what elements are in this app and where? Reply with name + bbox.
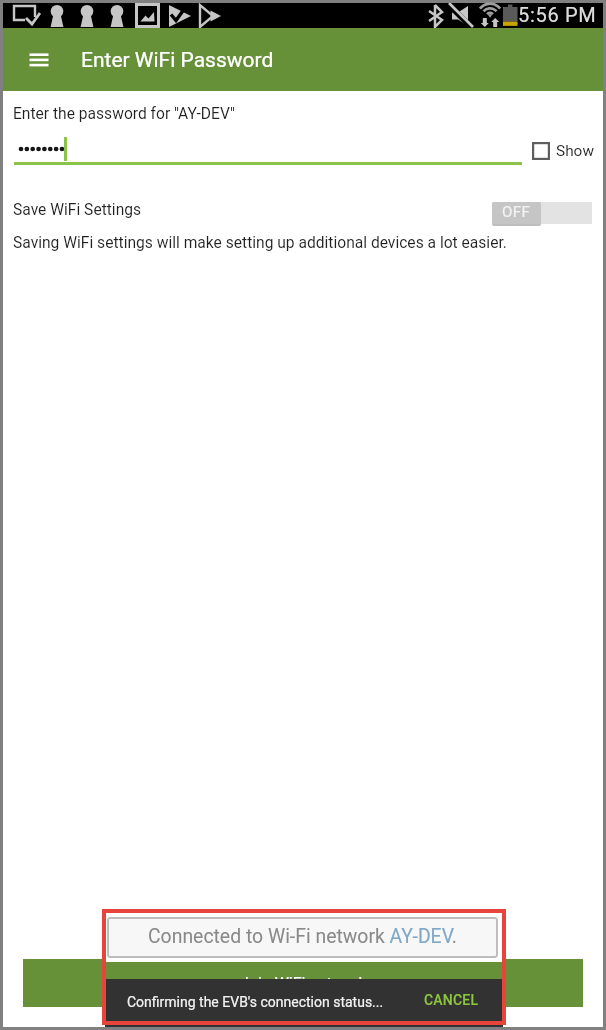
staticText: Enter the password for "AY-DEV" (13, 105, 235, 123)
staticText: Save WiFi Settings (13, 201, 142, 219)
staticText: Show (556, 142, 594, 160)
staticText: CANCEL (424, 992, 479, 1008)
staticText: Saving WiFi settings will make setting u… (13, 234, 507, 252)
button[interactable]: Join WiFi network (23, 959, 583, 1007)
button[interactable]: CANCEL (418, 985, 484, 1015)
staticText: Join WiFi network (240, 974, 367, 993)
staticText: Enter WiFi Password (81, 48, 274, 73)
staticText: Confirming the EVB's connection status..… (127, 994, 384, 1010)
button[interactable]: Show (529, 138, 601, 164)
staticText: Connected to Wi-Fi network AY-DEV. (148, 925, 457, 948)
button[interactable]: Connected to Wi-Fi network AY-DEV. (107, 917, 498, 958)
button[interactable]: OFF (492, 202, 592, 228)
staticText: OFF (502, 203, 531, 221)
button[interactable]: Open navigation menu (19, 38, 63, 82)
staticText: 5:56 PM (518, 3, 597, 26)
button[interactable] (14, 131, 522, 169)
